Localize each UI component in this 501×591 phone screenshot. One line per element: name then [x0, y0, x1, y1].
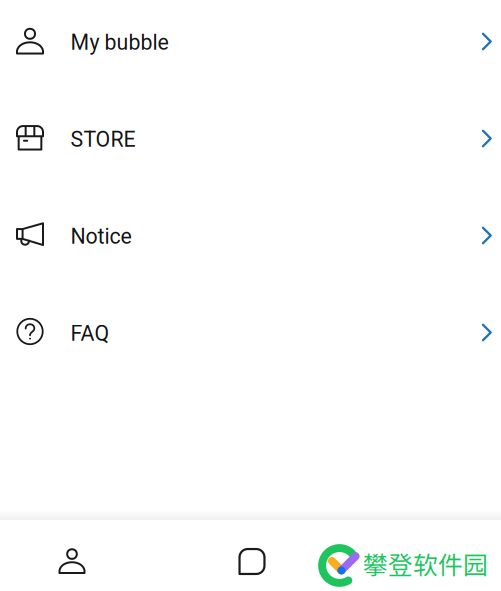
button[interactable]: My bubble: [0, 0, 501, 91]
staticText: STORE: [70, 127, 135, 152]
button[interactable]: Notice: [0, 188, 501, 285]
staticText: My bubble: [70, 30, 168, 55]
staticText: 攀登软件园: [363, 546, 488, 581]
button[interactable]: Profile: [36, 525, 108, 591]
button[interactable]: FAQ: [0, 285, 501, 382]
button[interactable]: STORE: [0, 91, 501, 188]
button[interactable]: Chat: [216, 526, 288, 591]
staticText: FAQ: [70, 321, 109, 346]
staticText: Notice: [70, 224, 131, 249]
